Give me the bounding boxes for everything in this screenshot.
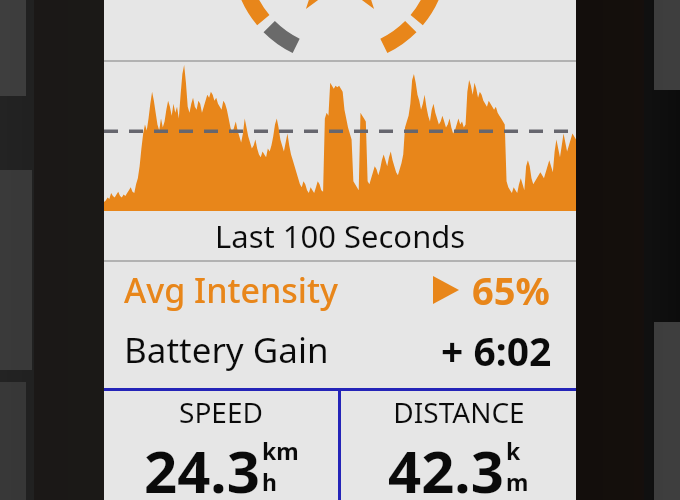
button[interactable]: DISTANCE <box>341 388 576 500</box>
button[interactable]: Avg Intensity <box>104 264 576 316</box>
button[interactable]: Battery Gain <box>104 322 576 378</box>
staticText: Last 100 Seconds <box>215 215 466 257</box>
staticText: h <box>262 466 277 497</box>
button[interactable]: Intensity graph, last 100 seconds <box>104 62 576 211</box>
button[interactable]: SPEED <box>104 388 338 500</box>
staticText: k <box>506 435 521 466</box>
button[interactable]: Last 100 Seconds <box>104 211 576 260</box>
staticText: 65% <box>472 264 550 316</box>
staticText: 24.3 <box>144 431 260 500</box>
staticText: Avg Intensity <box>124 267 338 313</box>
staticText: Battery Gain <box>124 326 329 374</box>
staticText: 42.3 <box>388 431 504 500</box>
staticText: km <box>262 435 299 466</box>
staticText: + 6:02 <box>441 324 552 377</box>
staticText: DISTANCE <box>393 393 525 431</box>
staticText: m <box>506 466 529 497</box>
staticText: SPEED <box>179 393 263 431</box>
button[interactable]: Intensity gauge <box>104 0 576 60</box>
